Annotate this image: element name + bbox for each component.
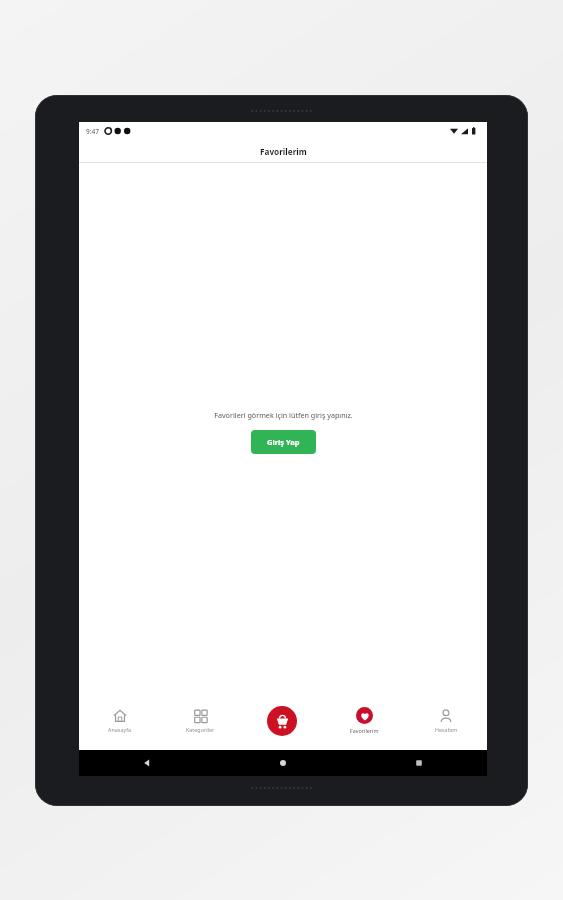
button[interactable]: Back [142, 758, 152, 768]
button[interactable]: Hesabım [405, 700, 487, 750]
button[interactable]: Favorilerim [323, 700, 405, 750]
staticText: Anasayfa [108, 726, 132, 733]
staticText: Giriş Yap [267, 437, 300, 447]
staticText: 9:47 [86, 127, 99, 136]
button[interactable]: Kategoriler [160, 700, 241, 750]
button[interactable]: Sepetim [267, 706, 297, 736]
staticText: Hesabım [435, 726, 458, 733]
button[interactable]: Recents [414, 758, 424, 768]
button[interactable]: Home [278, 758, 288, 768]
button[interactable]: Giriş Yap [251, 430, 316, 454]
staticText: Favorilerim [260, 146, 307, 157]
staticText: Favorilerim [350, 727, 379, 734]
staticText: Favorileri görmek için lütfen giriş yapı… [214, 410, 353, 420]
button[interactable]: Anasayfa [79, 700, 160, 750]
staticText: Kategoriler [186, 726, 215, 733]
